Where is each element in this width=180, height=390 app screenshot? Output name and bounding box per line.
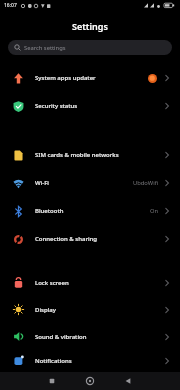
staticText: System apps updater (35, 74, 96, 82)
button[interactable]: Sound & vibration (0, 323, 180, 350)
staticText: Wi-Fi (35, 179, 49, 187)
button[interactable]: Notifications (0, 350, 180, 371)
staticText: UbdoWifi (133, 179, 159, 187)
button[interactable]: Lock screen (0, 269, 180, 296)
staticText: Security status (35, 102, 78, 110)
staticText: Search settings (24, 44, 66, 52)
staticText: Sound & vibration (35, 333, 87, 341)
staticText: Connection & sharing (35, 235, 98, 243)
button[interactable]: Wi-Fi (0, 169, 180, 197)
button[interactable]: Search settings (8, 40, 172, 55)
staticText: Display (35, 306, 56, 314)
button[interactable]: Security status (0, 92, 180, 120)
staticText: SIM cards & mobile networks (35, 151, 119, 159)
button[interactable] (33, 372, 71, 390)
button[interactable]: SIM cards & mobile networks (0, 141, 180, 169)
staticText: Bluetooth (35, 207, 64, 215)
staticText: On (150, 207, 159, 215)
button[interactable]: Connection & sharing (0, 225, 180, 253)
staticText: Lock screen (35, 279, 69, 287)
staticText: Settings (72, 20, 108, 32)
button[interactable] (109, 372, 147, 390)
button[interactable]: Display (0, 296, 180, 323)
staticText: Notifications (35, 357, 72, 365)
button[interactable]: System apps updater (0, 64, 180, 92)
staticText: 16:07 (4, 2, 17, 9)
button[interactable] (71, 372, 109, 390)
button[interactable]: Bluetooth (0, 197, 180, 225)
